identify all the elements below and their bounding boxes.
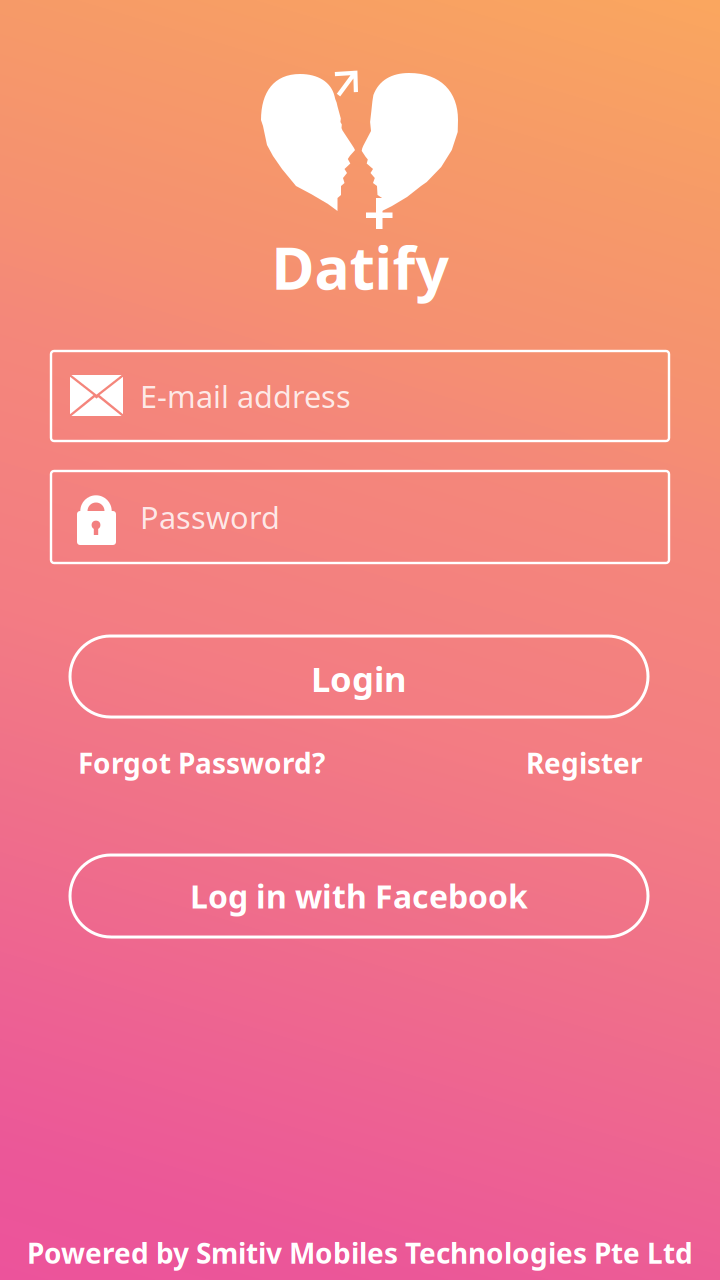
button[interactable]: Log in with Facebook <box>70 855 648 937</box>
staticText: Powered by Smitiv Mobiles Technologies P… <box>27 1234 693 1272</box>
button[interactable]: Login <box>70 636 648 717</box>
staticText: Password <box>140 497 280 537</box>
staticText: Register <box>526 744 643 782</box>
button[interactable]: Register <box>523 746 643 780</box>
staticText: Datify <box>271 228 448 306</box>
staticText: Login <box>311 655 407 701</box>
staticText: Forgot Password? <box>78 744 325 782</box>
button[interactable]: E-mail address <box>51 351 669 441</box>
button[interactable]: Forgot Password? <box>78 746 328 780</box>
staticText: E-mail address <box>140 376 351 416</box>
button[interactable]: Password <box>51 471 669 563</box>
staticText: Log in with Facebook <box>190 875 528 917</box>
